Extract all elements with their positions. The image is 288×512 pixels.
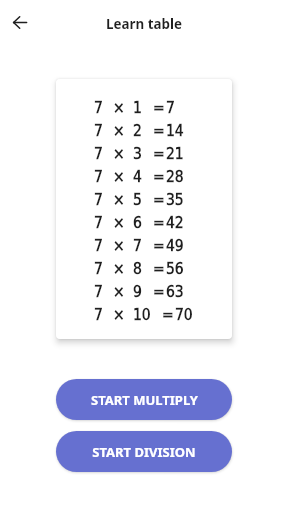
staticText: 7	[94, 99, 103, 117]
staticText: =	[153, 214, 165, 232]
staticText: =	[153, 237, 165, 255]
staticText: 7	[94, 306, 103, 324]
staticText: ×	[113, 214, 125, 232]
staticText: ×	[113, 99, 125, 117]
staticText: 7	[94, 283, 103, 301]
staticText: =	[162, 306, 174, 324]
staticText: 8	[133, 260, 142, 278]
staticText: 56	[166, 260, 184, 278]
staticText: =	[153, 191, 165, 209]
button[interactable]: START MULTIPLY	[56, 379, 232, 420]
staticText: 7	[94, 260, 103, 278]
staticText: =	[153, 168, 165, 186]
staticText: 21	[166, 145, 184, 163]
staticText: 42	[166, 214, 184, 232]
staticText: START MULTIPLY	[91, 391, 198, 409]
staticText: =	[153, 260, 165, 278]
button[interactable]: Back	[6, 8, 34, 36]
staticText: 28	[166, 168, 184, 186]
staticText: 3	[133, 145, 142, 163]
staticText: 49	[166, 237, 184, 255]
staticText: 7	[133, 237, 142, 255]
staticText: 7	[94, 214, 103, 232]
staticText: ×	[113, 168, 125, 186]
staticText: 1	[133, 99, 142, 117]
staticText: =	[153, 99, 165, 117]
staticText: 14	[166, 122, 184, 140]
staticText: 35	[166, 191, 184, 209]
staticText: ×	[113, 191, 125, 209]
staticText: 7	[166, 99, 175, 117]
staticText: 5	[133, 191, 142, 209]
staticText: =	[153, 145, 165, 163]
staticText: 63	[166, 283, 184, 301]
staticText: 7	[94, 145, 103, 163]
staticText: ×	[113, 306, 125, 324]
staticText: ×	[113, 122, 125, 140]
staticText: =	[153, 122, 165, 140]
staticText: START DIVISION	[92, 443, 196, 461]
staticText: 70	[175, 306, 193, 324]
button[interactable]: START DIVISION	[56, 431, 232, 472]
staticText: 7	[94, 168, 103, 186]
staticText: 4	[133, 168, 142, 186]
staticText: Learn table	[0, 15, 288, 33]
staticText: 9	[133, 283, 142, 301]
staticText: ×	[113, 283, 125, 301]
staticText: ×	[113, 260, 125, 278]
staticText: 7	[94, 122, 103, 140]
staticText: 7	[94, 191, 103, 209]
staticText: 10	[133, 306, 151, 324]
staticText: ×	[113, 145, 125, 163]
staticText: 2	[133, 122, 142, 140]
staticText: ×	[113, 237, 125, 255]
staticText: 6	[133, 214, 142, 232]
staticText: 7	[94, 237, 103, 255]
staticText: =	[153, 283, 165, 301]
